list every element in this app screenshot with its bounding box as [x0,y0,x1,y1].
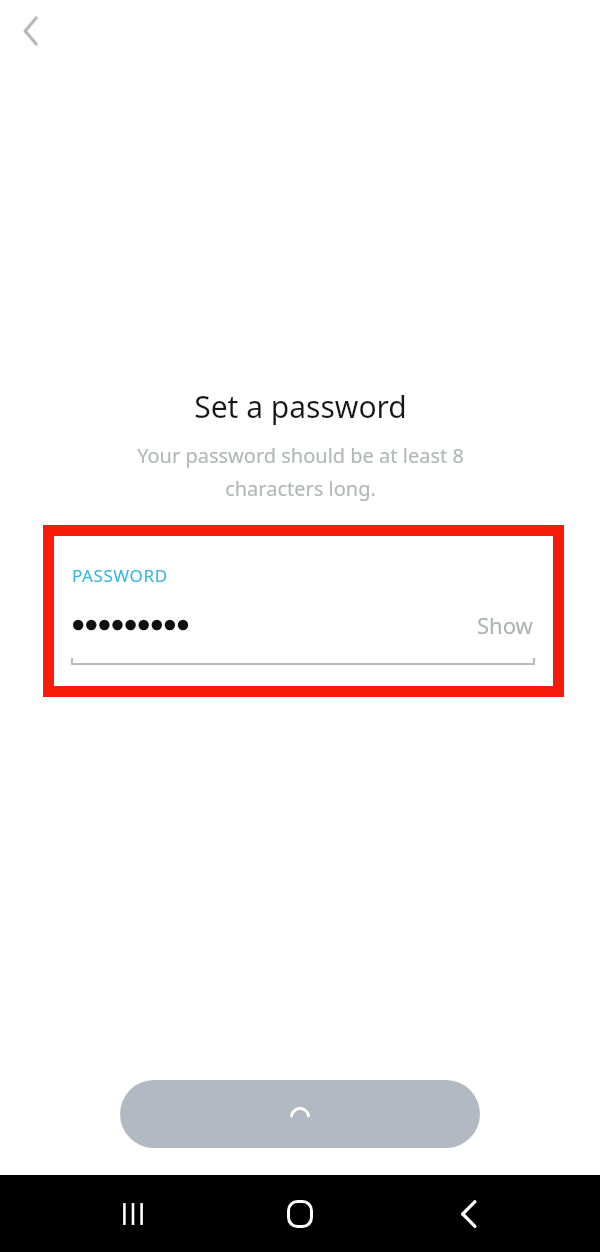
staticText: Set a password [194,386,407,427]
button[interactable]: Show [473,608,537,642]
button[interactable]: Back [8,8,54,54]
button[interactable]: Back [428,1175,508,1252]
button[interactable]: Home [260,1175,340,1252]
staticText: Show [477,610,533,640]
button[interactable]: Recents [93,1175,173,1252]
staticText: Your password should be at least 8 chara… [137,442,464,502]
button[interactable]: Continue [120,1080,480,1148]
staticText: PASSWORD [72,564,168,587]
